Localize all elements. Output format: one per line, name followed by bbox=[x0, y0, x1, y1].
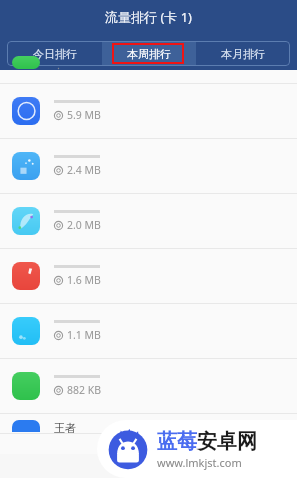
button[interactable]: 882 KB bbox=[0, 359, 297, 413]
button[interactable]: 本月排行 bbox=[196, 41, 290, 66]
staticText: 本月排行 bbox=[221, 47, 265, 61]
staticText: 本周排行 bbox=[127, 47, 171, 61]
staticText: www.lmkjst.com bbox=[157, 455, 242, 470]
button[interactable]: 王者 bbox=[0, 414, 297, 454]
staticText: 王者 bbox=[54, 421, 76, 435]
staticText: 今日排行 bbox=[33, 47, 77, 61]
button[interactable]: 2.4 MB bbox=[0, 139, 297, 193]
staticText: 1.1 MB bbox=[67, 328, 101, 342]
staticText: 蓝莓 bbox=[157, 429, 197, 454]
staticText: 安卓网 bbox=[197, 429, 257, 454]
staticText: 2.0 MB bbox=[67, 218, 101, 232]
button[interactable]: 1.1 MB bbox=[0, 304, 297, 358]
button[interactable]: 今日排行 bbox=[7, 41, 102, 66]
staticText: 882 KB bbox=[67, 383, 102, 397]
button[interactable]: 5.9 MB bbox=[0, 84, 297, 138]
staticText: 流量排行 (卡 1) bbox=[0, 8, 297, 26]
button[interactable]: 本周排行 bbox=[102, 41, 196, 66]
button[interactable]: 2.0 MB bbox=[0, 194, 297, 248]
staticText: 5.9 MB bbox=[67, 108, 101, 122]
staticText: 2.4 MB bbox=[67, 163, 101, 177]
button[interactable]: 1.6 MB bbox=[0, 249, 297, 303]
staticText: 1.6 MB bbox=[67, 273, 101, 287]
other: Highlight bbox=[112, 43, 184, 64]
